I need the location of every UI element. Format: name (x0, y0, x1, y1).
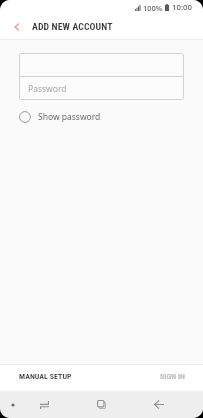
button[interactable]: Navigate up (0, 14, 32, 39)
button[interactable]: Recent apps (16, 391, 73, 418)
staticText: ADD NEW ACCOUNT (32, 21, 113, 32)
button[interactable]: Show password (13, 108, 109, 126)
staticText: SIGN IN (160, 372, 185, 381)
button[interactable] (19, 53, 184, 76)
button[interactable]: Back (129, 391, 185, 418)
staticText: 10:00 (172, 2, 192, 13)
staticText: 100% (143, 3, 163, 13)
staticText: MANUAL SETUP (19, 372, 72, 381)
button[interactable]: Home (73, 391, 129, 418)
button[interactable]: Password (19, 77, 184, 100)
staticText: Password (28, 83, 67, 95)
staticText: Show password (38, 111, 101, 123)
button[interactable]: MANUAL SETUP (0, 365, 101, 391)
button[interactable]: Hide navigation bar (2, 391, 24, 418)
button[interactable]: SIGN IN (101, 365, 203, 391)
